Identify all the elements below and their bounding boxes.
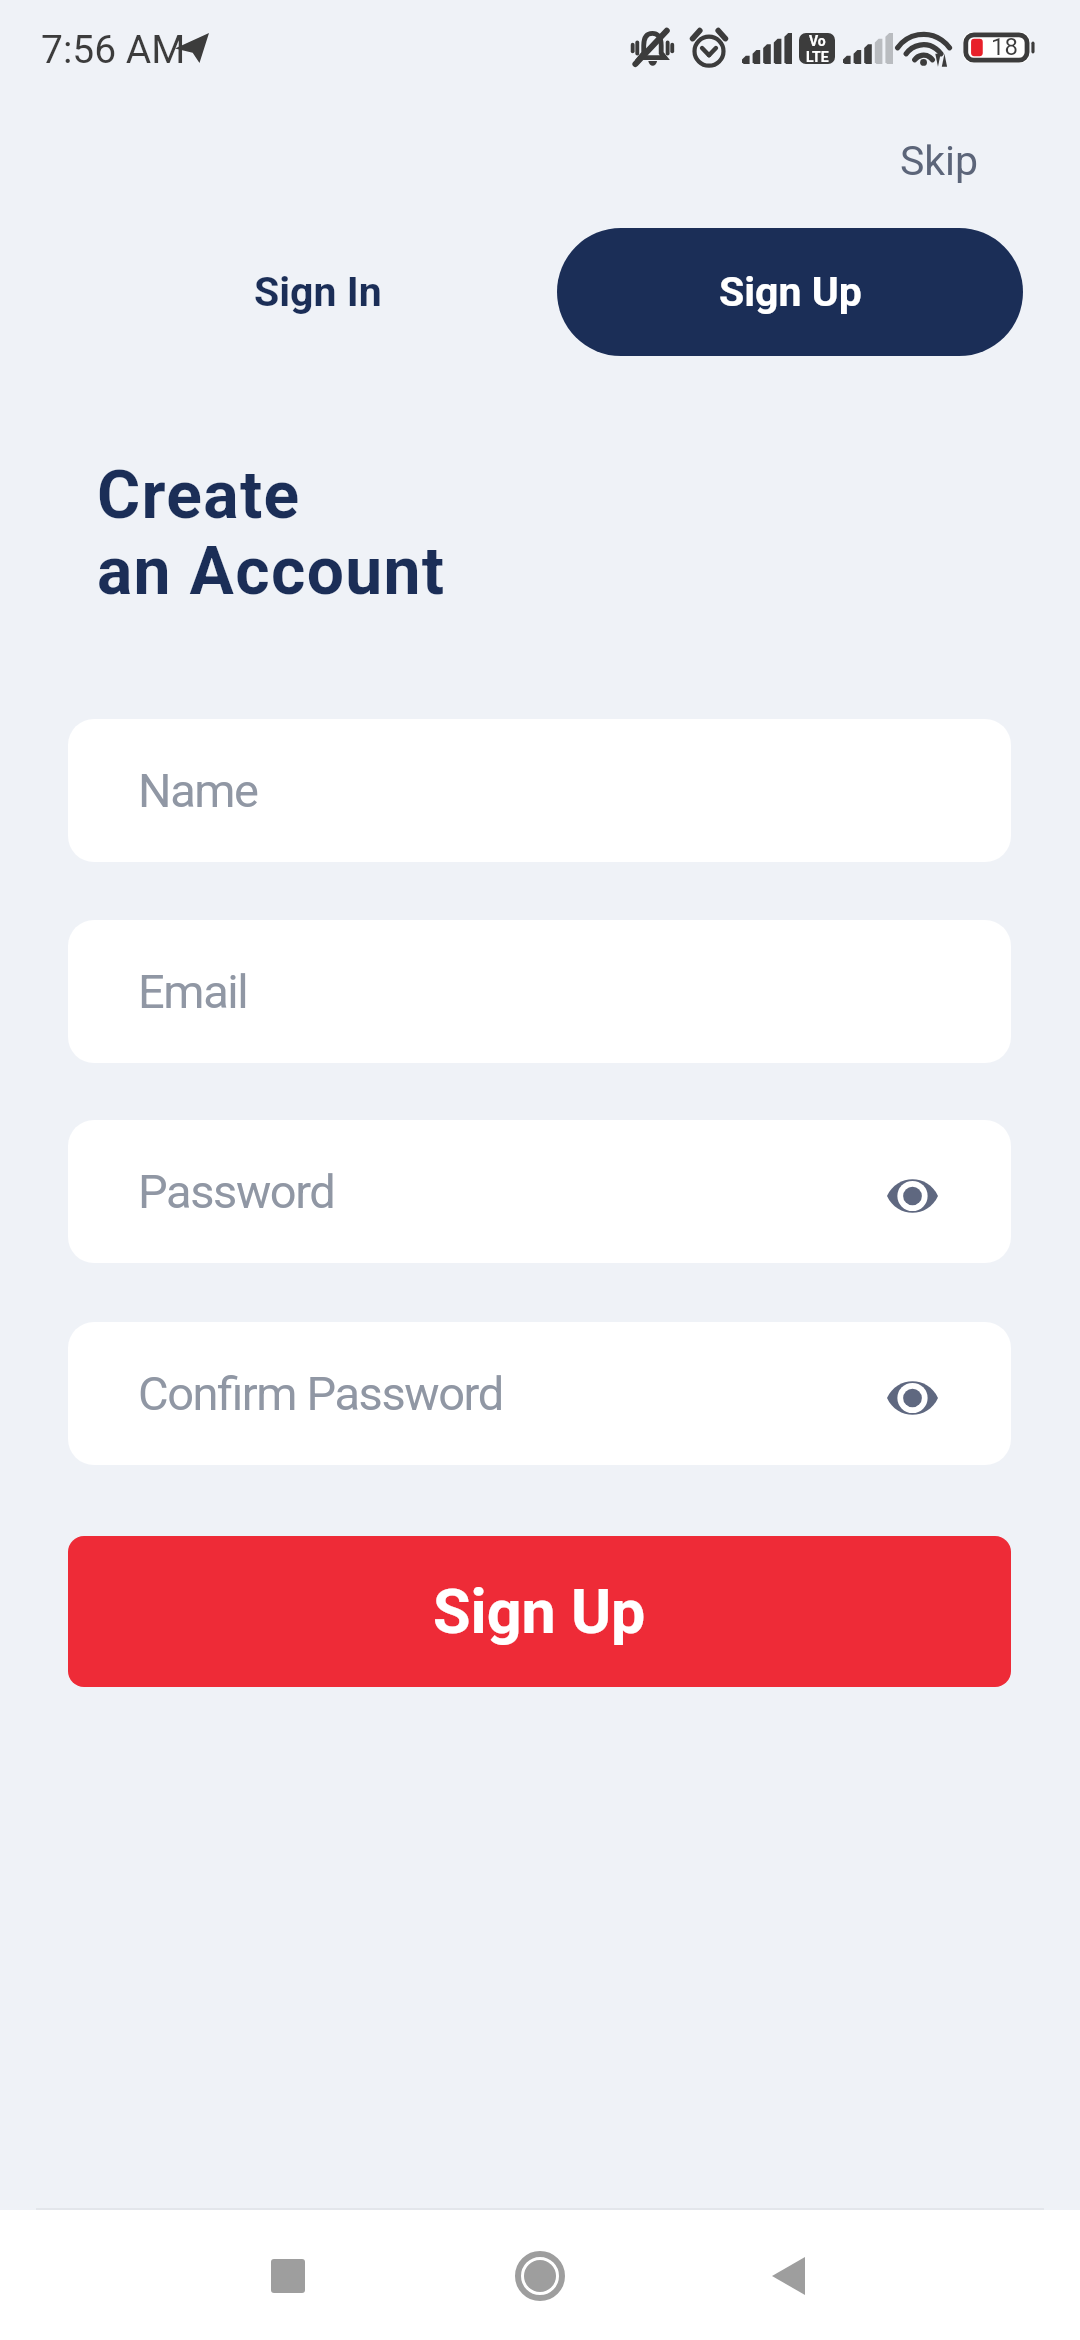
staticText: LTE (806, 49, 829, 64)
button[interactable]: Confirm Password (68, 1322, 1011, 1465)
staticText: 18 (991, 33, 1018, 61)
button[interactable]: Sign Up (557, 228, 1023, 356)
staticText: Name (138, 763, 258, 818)
button[interactable]: Back (728, 2226, 848, 2326)
staticText: Create an Account (97, 457, 446, 610)
staticText: Password (138, 1164, 335, 1219)
button[interactable]: Sign Up (68, 1536, 1011, 1687)
button[interactable]: Sign In (180, 228, 456, 356)
staticText: Confirm Password (138, 1366, 503, 1421)
button[interactable]: Show password (874, 1158, 950, 1234)
button[interactable]: Recent apps (228, 2226, 348, 2326)
button[interactable]: Email (68, 920, 1011, 1063)
staticText: Sign Up (433, 1576, 646, 1647)
staticText: Email (138, 964, 248, 1019)
button[interactable]: Password (68, 1120, 1011, 1263)
staticText: Sign In (254, 268, 382, 316)
button[interactable]: Name (68, 719, 1011, 862)
staticText: Skip (900, 137, 979, 185)
button[interactable]: Home (480, 2226, 600, 2326)
button[interactable]: Skip (866, 118, 1012, 204)
staticText: 7:56 AM (41, 27, 186, 73)
button[interactable]: Show password (874, 1360, 950, 1436)
staticText: Sign Up (719, 268, 862, 316)
staticText: Vo (809, 33, 826, 49)
